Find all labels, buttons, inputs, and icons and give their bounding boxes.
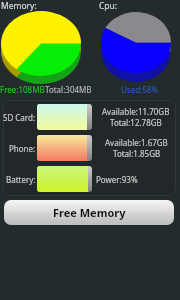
staticText: Total:304MB [45,84,92,95]
staticText: Battery: [6,174,36,185]
staticText: Total:12.78GB [110,117,162,128]
staticText: Power:93% [96,174,138,185]
staticText: Free:108MB [0,84,45,95]
staticText: SD Card: [3,112,36,123]
staticText: Available:1.67GB [105,137,168,148]
staticText: Memory: [1,0,37,12]
staticText: Cpu: [99,0,118,12]
staticText: Phone: [9,143,36,154]
button[interactable]: Free Memory [4,200,174,225]
staticText: Used:58% [121,84,159,95]
staticText: Free Memory [53,205,126,220]
staticText: Total:1.85GB [113,148,161,159]
staticText: Available:11.70GB [102,106,170,117]
